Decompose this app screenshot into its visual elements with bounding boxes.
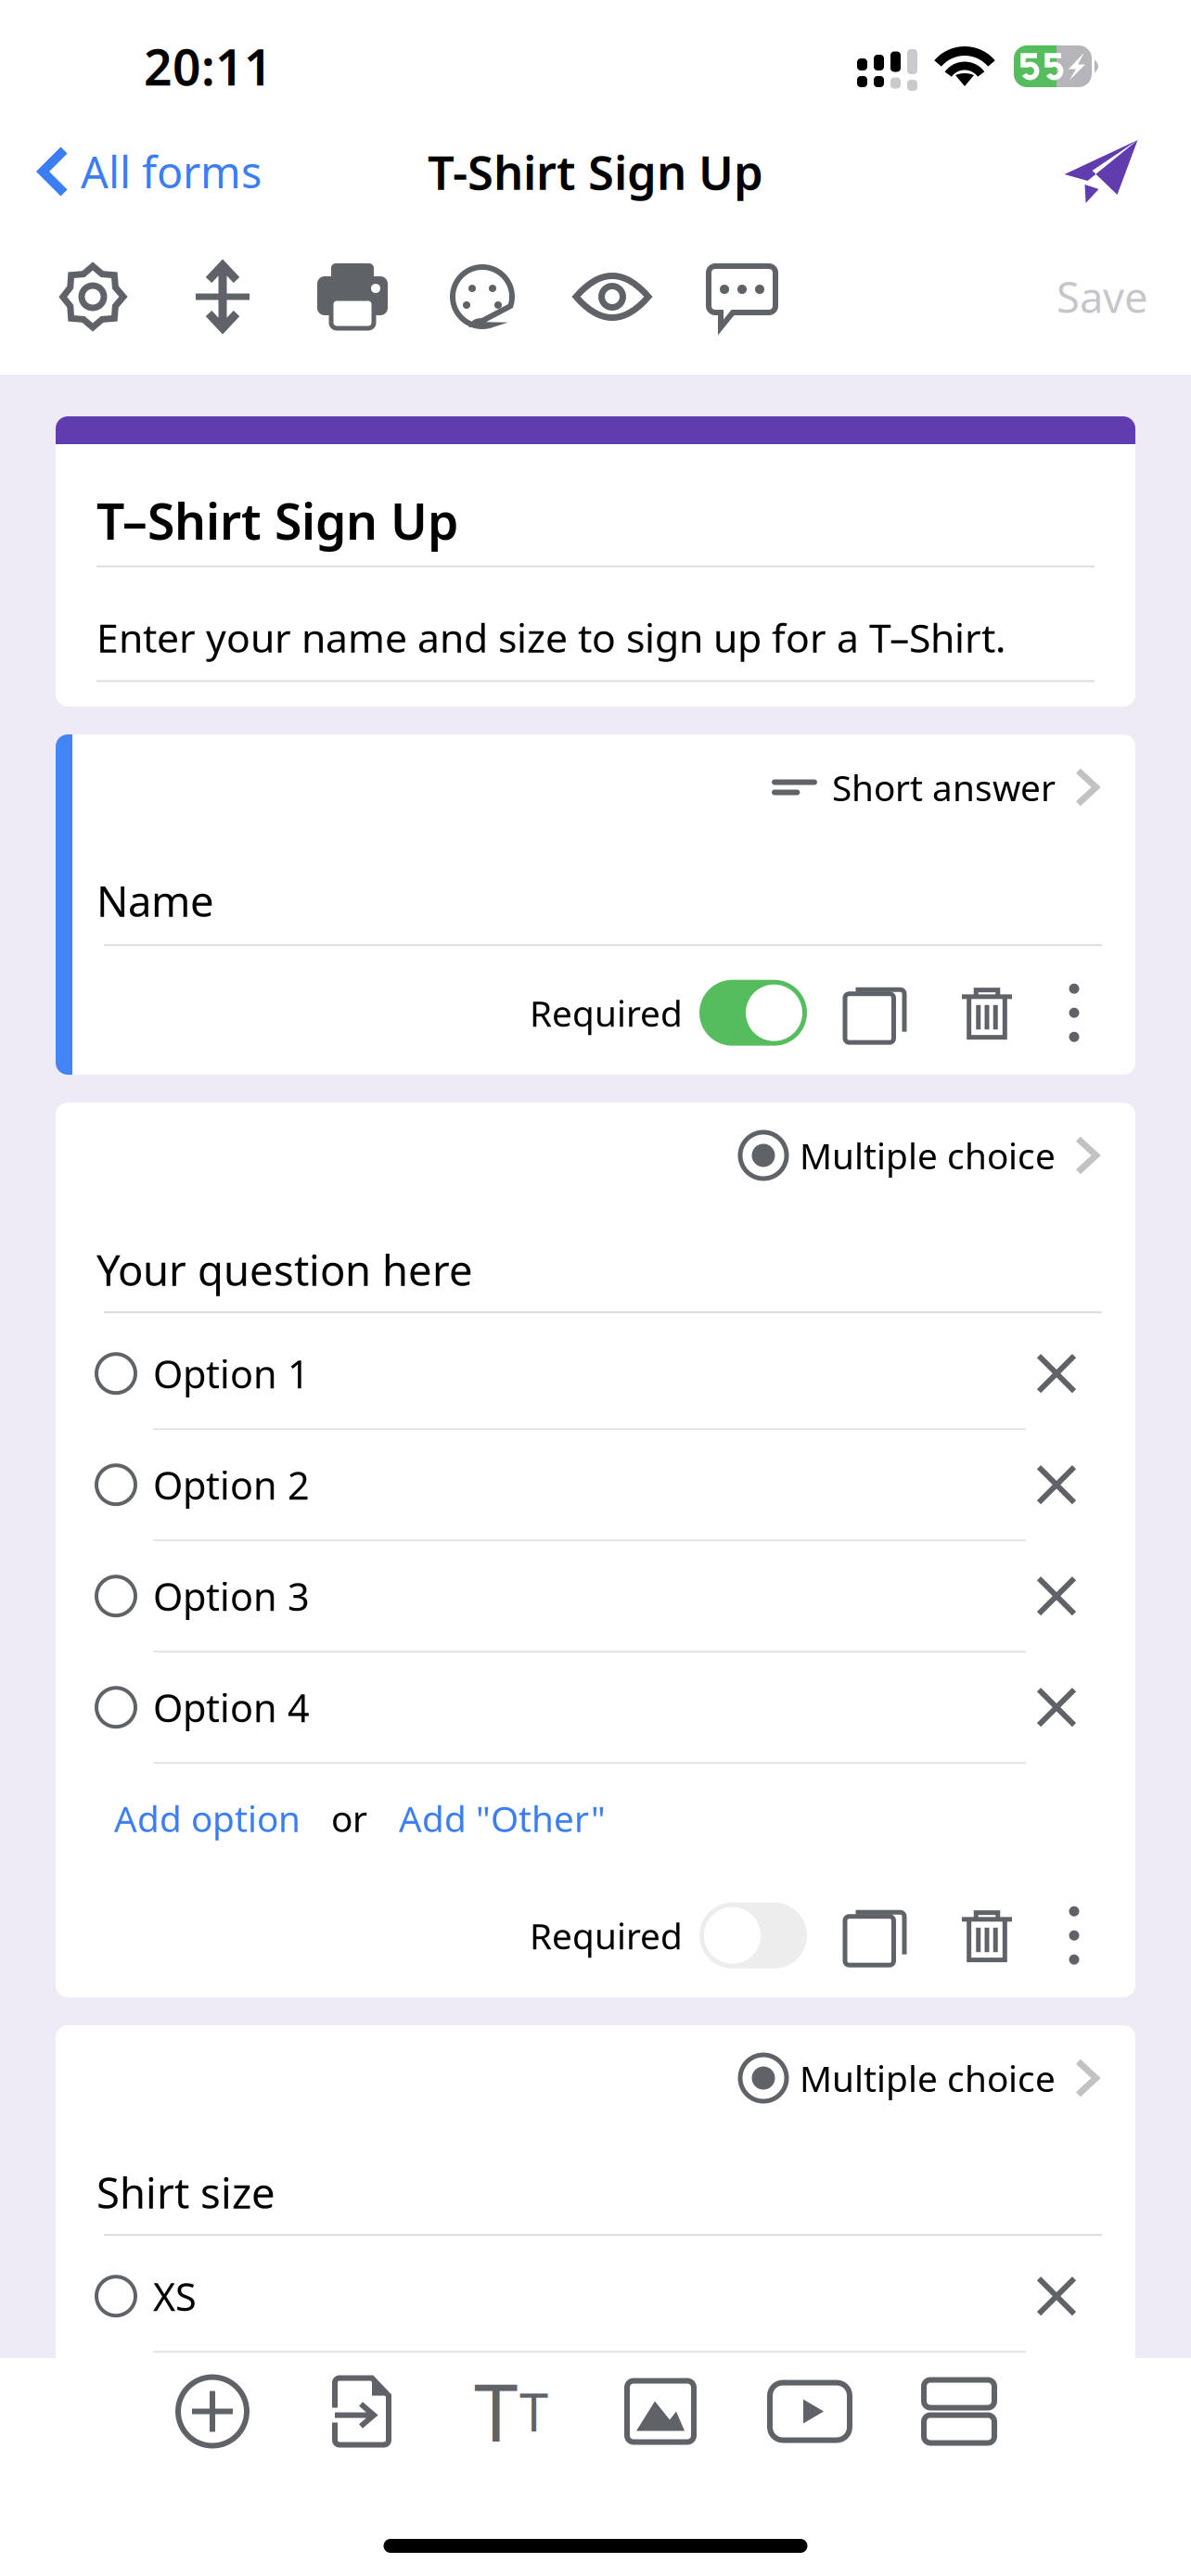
button[interactable]: Required, on	[699, 980, 807, 1046]
staticText: Short answer	[832, 763, 1056, 811]
staticText: Option 2	[153, 1459, 310, 1510]
staticText: All forms	[81, 143, 262, 200]
staticText: XS	[153, 2271, 197, 2322]
staticText: Name	[96, 873, 214, 928]
staticText: Required	[530, 989, 683, 1037]
button[interactable]: Delete question	[959, 1908, 1015, 1963]
button[interactable]: Add section	[899, 2358, 1019, 2465]
button[interactable]: Delete question	[959, 985, 1015, 1041]
button[interactable]: Option 3	[96, 1541, 1109, 1651]
button[interactable]: More options	[1060, 984, 1088, 1042]
staticText: T-Shirt Sign Up	[428, 140, 763, 203]
staticText: Option 3	[153, 1571, 310, 1622]
button[interactable]: Add title and description	[451, 2358, 571, 2465]
button[interactable]: Duplicate question	[845, 1906, 904, 1965]
button[interactable]: More options	[1060, 1906, 1088, 1965]
button[interactable]: S	[96, 2353, 1109, 2462]
button[interactable]: Preview	[547, 235, 677, 359]
button[interactable]: Add image	[600, 2358, 721, 2465]
staticText: Option 1	[153, 1348, 310, 1399]
staticText: Enter your name and size to sign up for …	[96, 611, 1005, 663]
staticText: Add "Other"	[399, 1794, 606, 1842]
button[interactable]: Add "Other"	[399, 1794, 606, 1842]
button[interactable]: Option 2	[96, 1430, 1109, 1539]
button[interactable]: Add option	[114, 1794, 301, 1842]
button[interactable]: Duplicate question	[845, 983, 904, 1042]
button[interactable]: Option 4	[96, 1653, 1109, 1762]
button[interactable]: Add question	[152, 2358, 273, 2465]
button[interactable]: XS	[96, 2241, 1109, 2351]
button[interactable]: Short answer	[96, 760, 1109, 814]
staticText: T–Shirt Sign Up	[96, 488, 458, 553]
staticText: T	[474, 2359, 518, 2464]
staticText: 20:11	[144, 33, 273, 99]
button[interactable]: Add video	[749, 2358, 870, 2465]
staticText: T	[519, 2377, 548, 2446]
button[interactable]: Option 1	[96, 1319, 1109, 1428]
button[interactable]: Import questions	[301, 2358, 422, 2465]
staticText: Save	[1057, 269, 1148, 325]
button[interactable]: Theme	[417, 235, 547, 359]
staticText: Shirt size	[96, 2164, 275, 2220]
button[interactable]: Print	[288, 235, 417, 359]
staticText: Your question here	[96, 1242, 473, 1297]
button[interactable]: Reorder questions	[158, 235, 288, 359]
button[interactable]: Comments	[677, 235, 807, 359]
button[interactable]: Save	[1057, 235, 1191, 359]
button[interactable]: M	[96, 2464, 1109, 2573]
staticText: Option 4	[153, 1682, 310, 1733]
staticText: Add option	[114, 1794, 301, 1842]
button[interactable]: All forms	[0, 121, 284, 223]
button[interactable]: Settings	[28, 235, 158, 359]
staticText: or	[331, 1794, 367, 1842]
staticText: Required	[530, 1912, 683, 1959]
staticText: Multiple choice	[800, 1132, 1056, 1179]
button[interactable]: Multiple choice	[96, 2051, 1109, 2105]
button[interactable]: Multiple choice	[96, 1129, 1109, 1182]
button[interactable]: Required, off	[699, 1903, 807, 1968]
button[interactable]: Send form	[1050, 121, 1152, 223]
staticText: Multiple choice	[800, 2054, 1056, 2102]
